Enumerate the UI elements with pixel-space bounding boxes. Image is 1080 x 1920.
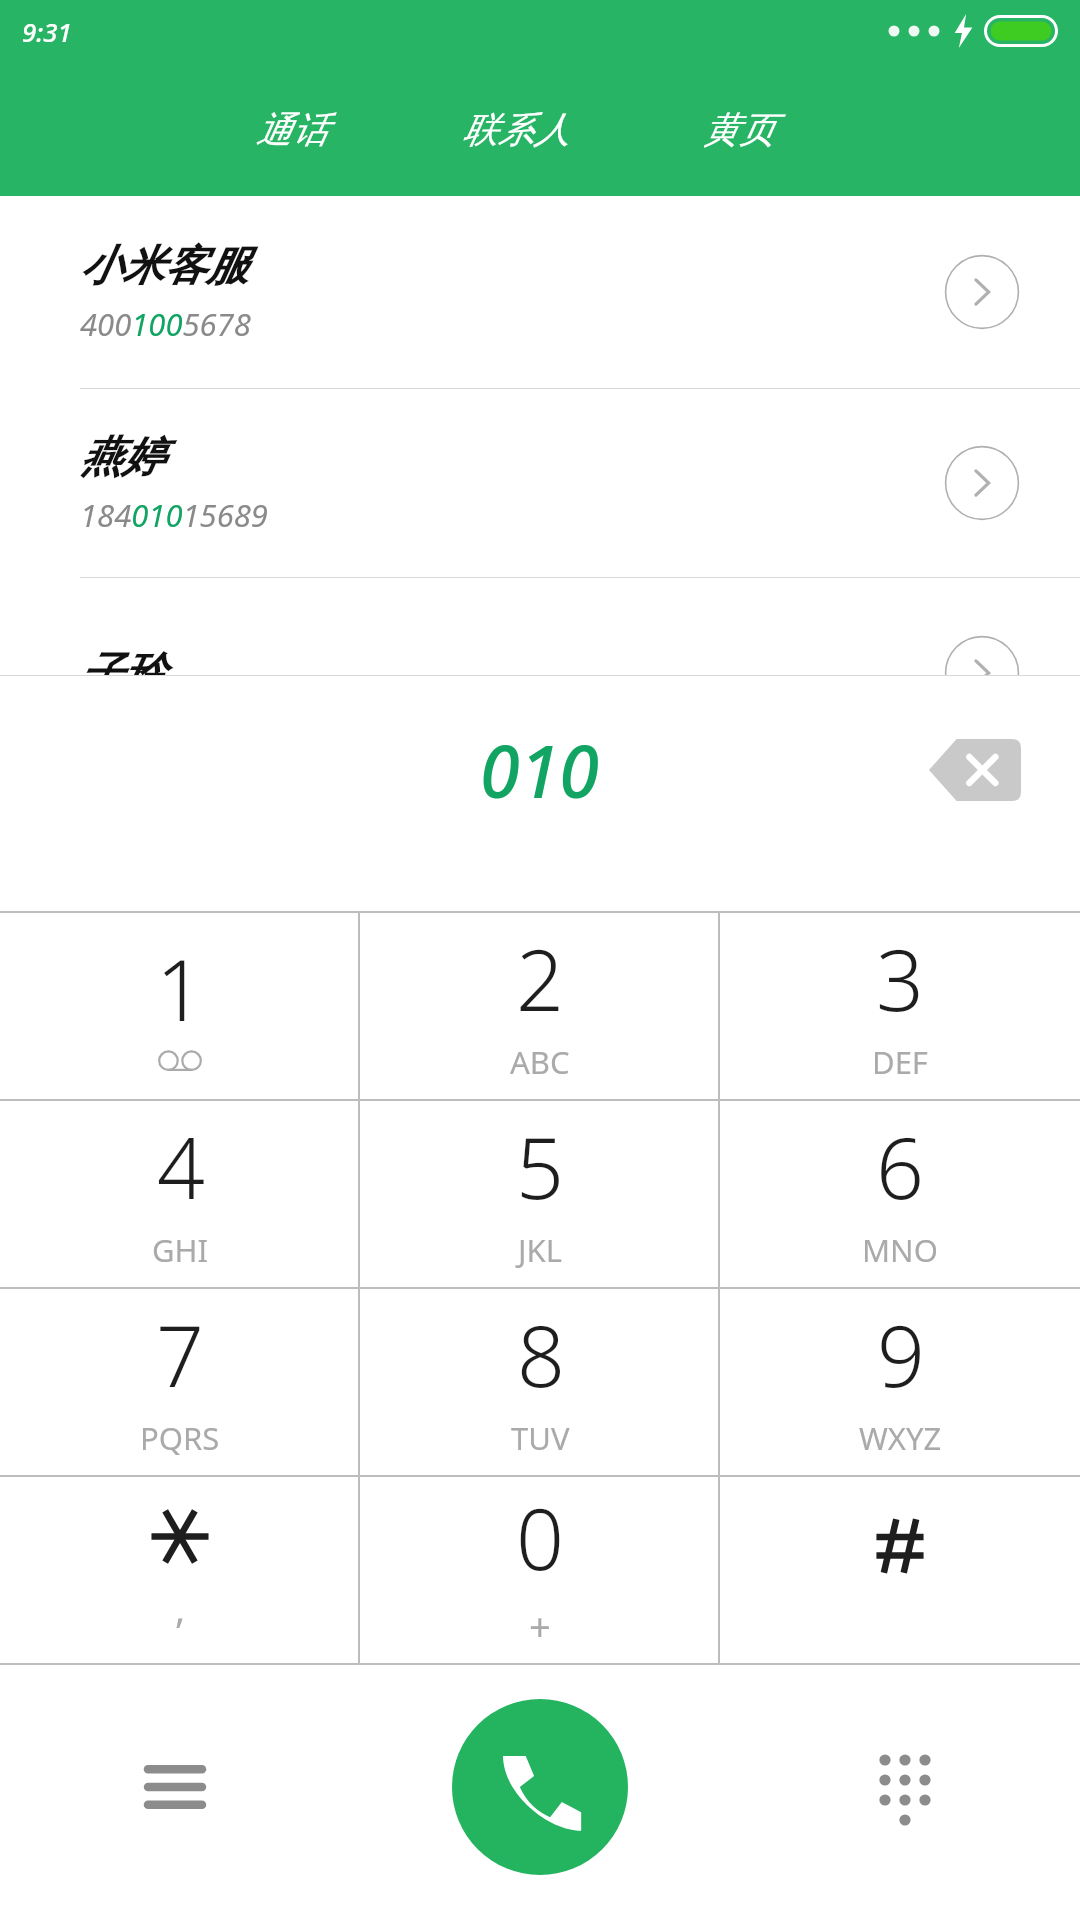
button[interactable]: 3: [720, 913, 1080, 1099]
staticText: 3: [876, 921, 924, 1035]
button[interactable]: Details: [944, 445, 1020, 521]
staticText: 6: [876, 1109, 924, 1223]
staticText: 18401015689: [80, 494, 268, 536]
staticText: 通话: [256, 107, 328, 152]
button[interactable]: 5: [360, 1101, 720, 1287]
staticText: GHI: [152, 1229, 209, 1271]
button[interactable]: 子玲: [0, 578, 1080, 768]
button[interactable]: 4: [0, 1101, 360, 1287]
staticText: 小米客服: [80, 240, 248, 293]
staticText: 1: [156, 931, 204, 1045]
staticText: 8: [517, 1297, 565, 1411]
staticText: 燕婷: [80, 431, 164, 484]
button[interactable]: 2: [360, 913, 720, 1099]
staticText: 4001005678: [80, 303, 251, 345]
staticText: 9: [877, 1297, 925, 1411]
staticText: 4: [157, 1109, 205, 1223]
button[interactable]: 7: [0, 1289, 360, 1475]
staticText: TUV: [511, 1417, 570, 1459]
button[interactable]: Menu: [120, 1732, 230, 1842]
staticText: PQRS: [140, 1417, 220, 1459]
button[interactable]: 通话: [180, 62, 404, 196]
button[interactable]: 9: [720, 1289, 1080, 1475]
staticText: MNO: [862, 1229, 938, 1271]
button[interactable]: 联系人: [404, 62, 627, 196]
staticText: WXYZ: [859, 1417, 942, 1459]
button[interactable]: 8: [360, 1289, 720, 1475]
button[interactable]: 小米客服: [0, 196, 1080, 388]
staticText: 黄页: [703, 107, 775, 152]
staticText: 5: [516, 1109, 564, 1223]
staticText: ,: [175, 1582, 186, 1634]
button[interactable]: Call: [452, 1699, 628, 1875]
button[interactable]: Details: [944, 635, 1020, 711]
button[interactable]: 0: [360, 1477, 720, 1663]
staticText: DEF: [872, 1041, 928, 1083]
button[interactable]: Dialpad: [850, 1732, 960, 1842]
button[interactable]: [720, 1477, 1080, 1663]
staticText: 联系人: [462, 107, 570, 152]
button[interactable]: 1: [0, 913, 360, 1099]
staticText: +: [529, 1600, 551, 1652]
button[interactable]: 6: [720, 1101, 1080, 1287]
staticText: 010: [480, 721, 600, 819]
button[interactable]: Backspace: [920, 731, 1030, 809]
staticText: 7: [156, 1297, 204, 1411]
staticText: 子玲: [80, 647, 164, 700]
button[interactable]: ,: [0, 1477, 360, 1663]
staticText: ABC: [510, 1041, 570, 1083]
staticText: JKL: [518, 1229, 562, 1271]
button[interactable]: 黄页: [627, 62, 850, 196]
staticText: 0: [516, 1480, 564, 1594]
button[interactable]: 燕婷: [0, 389, 1080, 577]
staticText: 9:31: [22, 14, 72, 49]
button[interactable]: Details: [944, 254, 1020, 330]
staticText: 2: [516, 921, 564, 1035]
